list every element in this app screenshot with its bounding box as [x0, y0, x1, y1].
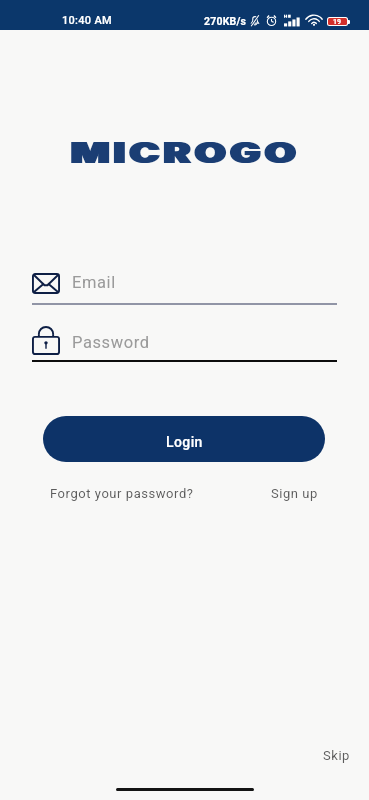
staticText: Skip	[323, 748, 350, 763]
button[interactable]: Password	[32, 325, 337, 354]
staticText: MICROGO	[72, 135, 302, 170]
staticText: 270KB/s	[204, 15, 247, 27]
staticText: Sign up	[271, 486, 318, 501]
staticText: Email	[72, 273, 116, 292]
button[interactable]: Login	[43, 416, 325, 462]
staticText: Login	[166, 434, 203, 450]
staticText: MICROGO	[69, 135, 299, 170]
staticText: Password	[72, 333, 150, 352]
button[interactable]: Skip	[323, 748, 350, 763]
staticText: 19	[333, 18, 342, 25]
button[interactable]: Email	[32, 270, 337, 291]
other: Email	[32, 273, 60, 294]
staticText: MICROGO	[70, 135, 300, 170]
staticText: Forgot your password?	[50, 486, 194, 501]
button[interactable]: Sign up	[271, 486, 318, 501]
other: Password	[32, 326, 60, 355]
staticText: 10:40 AM	[62, 14, 112, 27]
button[interactable]: Forgot your password?	[50, 486, 194, 501]
